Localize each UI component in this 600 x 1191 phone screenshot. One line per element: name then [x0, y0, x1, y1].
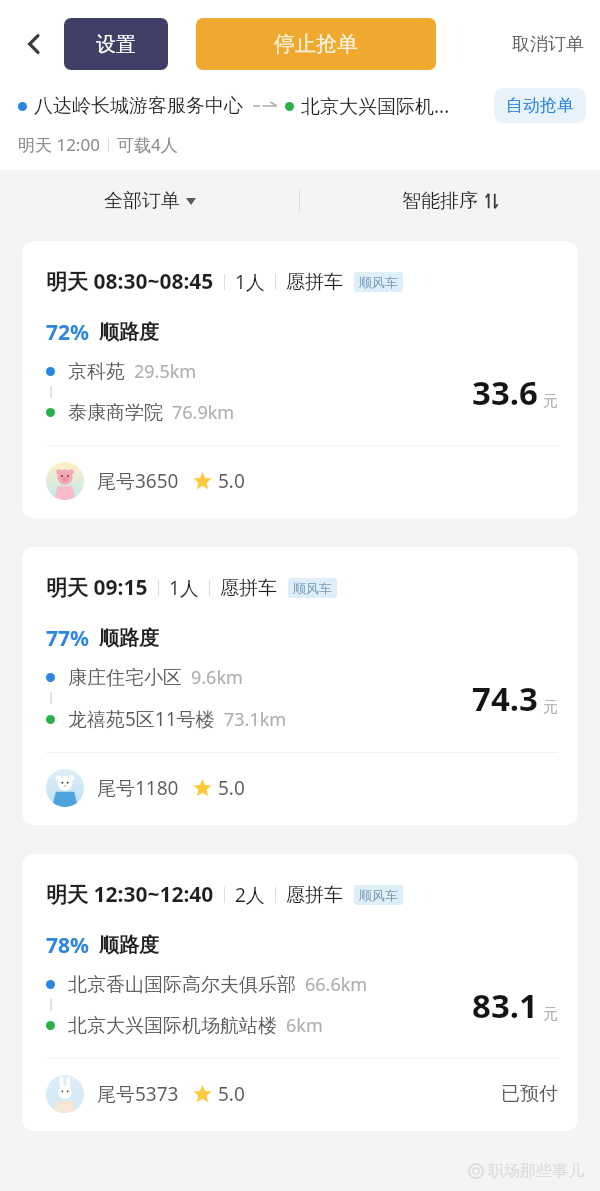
- staticText: 愿拼车: [286, 270, 343, 294]
- staticText: 顺路度: [99, 626, 159, 651]
- staticText: 愿拼车: [220, 576, 277, 600]
- staticText: 可载4人: [117, 133, 178, 156]
- button[interactable]: 明天 12:30~12:40: [22, 854, 578, 1131]
- staticText: 明天 12:00: [18, 133, 100, 156]
- staticText: 尾号5373: [97, 1081, 179, 1107]
- staticText: 智能排序: [402, 189, 478, 213]
- button[interactable]: 停止抢单: [196, 18, 436, 70]
- staticText: 顺风车: [359, 887, 398, 903]
- staticText: 9.6km: [191, 665, 243, 690]
- staticText: 73.1km: [224, 707, 287, 732]
- staticText: 29.5km: [134, 359, 197, 384]
- staticText: 已预付: [501, 1082, 558, 1106]
- staticText: 京科苑: [68, 360, 125, 384]
- button[interactable]: 智能排序: [392, 181, 508, 221]
- staticText: 取消订单: [512, 33, 584, 56]
- staticText: 愿拼车: [286, 883, 343, 907]
- staticText: 龙禧苑5区11号楼: [68, 706, 215, 732]
- staticText: 5.0: [218, 1081, 245, 1107]
- staticText: 元: [543, 392, 558, 411]
- staticText: 5.0: [218, 468, 245, 494]
- staticText: 元: [543, 698, 558, 717]
- staticText: 尾号3650: [97, 468, 179, 494]
- staticText: 2人: [235, 882, 265, 908]
- staticText: 66.6km: [305, 972, 368, 997]
- staticText: 明天 08:30~08:45: [46, 267, 214, 296]
- staticText: 77%: [46, 624, 89, 653]
- staticText: 职场那些事儿: [488, 1161, 584, 1181]
- button[interactable]: Back: [12, 22, 56, 66]
- staticText: 全部订单: [104, 189, 180, 213]
- button[interactable]: 明天 08:30~08:45: [22, 241, 578, 518]
- staticText: 明天 09:15: [46, 573, 148, 602]
- staticText: 八达岭长城游客服务中心: [34, 94, 243, 118]
- staticText: 北京大兴国际机场航站楼: [68, 1014, 277, 1038]
- button[interactable]: 明天 09:15: [22, 547, 578, 825]
- staticText: 顺路度: [99, 933, 159, 958]
- staticText: 1人: [235, 269, 265, 295]
- staticText: 5.0: [218, 775, 245, 801]
- staticText: 1人: [169, 575, 199, 601]
- staticText: 尾号1180: [97, 775, 179, 801]
- staticText: 康庄住宅小区: [68, 666, 182, 690]
- staticText: 元: [543, 1005, 558, 1024]
- staticText: 6km: [286, 1013, 323, 1038]
- button[interactable]: 设置: [64, 18, 168, 70]
- staticText: 74.3: [472, 676, 538, 721]
- staticText: 北京香山国际高尔夫俱乐部: [68, 973, 296, 997]
- staticText: 顺路度: [99, 320, 159, 345]
- button[interactable]: 取消订单: [508, 25, 588, 64]
- staticText: 设置: [96, 32, 136, 57]
- button[interactable]: 自动抢单: [494, 88, 586, 123]
- staticText: 78%: [46, 931, 89, 960]
- staticText: 泰康商学院: [68, 401, 163, 425]
- staticText: 北京大兴国际机...: [301, 93, 450, 119]
- staticText: 自动抢单: [506, 95, 574, 116]
- staticText: 明天 12:30~12:40: [46, 880, 214, 909]
- staticText: 停止抢单: [274, 31, 358, 57]
- staticText: 顺风车: [293, 580, 332, 596]
- staticText: 顺风车: [359, 274, 398, 290]
- staticText: 72%: [46, 318, 89, 347]
- staticText: 76.9km: [172, 400, 235, 425]
- button[interactable]: 全部订单: [94, 181, 206, 221]
- staticText: 83.1: [472, 983, 538, 1028]
- staticText: 33.6: [472, 370, 538, 415]
